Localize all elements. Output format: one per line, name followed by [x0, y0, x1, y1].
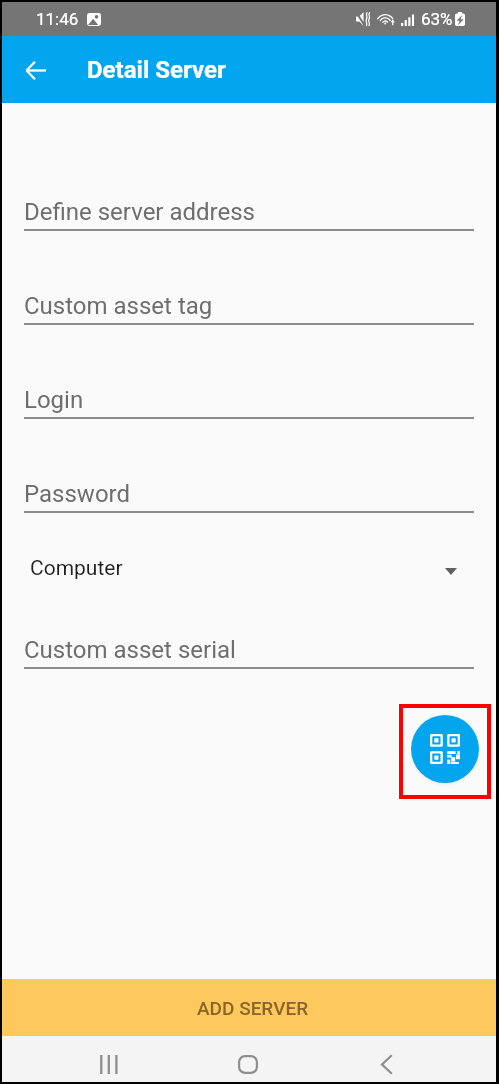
button[interactable]: Recent apps: [77, 1041, 141, 1084]
staticText: 63%: [421, 9, 453, 29]
staticText: ADD SERVER: [197, 997, 309, 1019]
button[interactable]: Home: [216, 1041, 280, 1084]
button[interactable]: Custom asset serial: [2, 575, 496, 669]
staticText: Custom asset tag: [24, 292, 213, 320]
staticText: Login: [24, 386, 84, 414]
staticText: Password: [24, 480, 131, 508]
button[interactable]: Back: [354, 1041, 418, 1084]
button[interactable]: Custom asset tag: [2, 231, 496, 325]
staticText: Detail Server: [87, 56, 226, 84]
staticText: Computer: [30, 556, 123, 581]
button[interactable]: Computer: [23, 513, 473, 575]
button[interactable]: Define server address: [2, 137, 496, 231]
button[interactable]: ADD SERVER: [2, 979, 496, 1036]
staticText: 11:46: [36, 9, 79, 29]
button[interactable]: Navigate up: [12, 46, 60, 94]
button[interactable]: Password: [2, 419, 496, 513]
staticText: Custom asset serial: [24, 636, 236, 664]
button[interactable]: Scan QR code: [411, 715, 479, 783]
staticText: Define server address: [24, 198, 255, 226]
button[interactable]: Login: [2, 325, 496, 419]
